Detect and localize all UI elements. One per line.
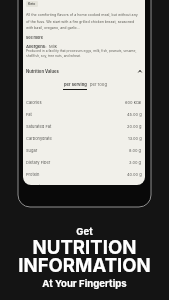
- staticText: 8.00 g: [129, 148, 142, 153]
- staticText: At Your Fingertips: [0, 278, 169, 290]
- staticText: Sugar: [26, 148, 38, 153]
- button[interactable]: Sugar: [26, 144, 142, 156]
- staticText: INFORMATION: [0, 254, 169, 277]
- staticText: 45.00 g: [127, 112, 142, 117]
- staticText: Dietary Fiber: [26, 160, 51, 165]
- button[interactable]: Saturated Fat: [26, 120, 142, 132]
- staticText: 20.00 g: [127, 124, 142, 129]
- staticText: Get: [0, 226, 169, 237]
- button[interactable]: Cholesterol: [26, 180, 142, 185]
- button[interactable]: Protein: [26, 168, 142, 180]
- staticText: Cholesterol: [26, 184, 48, 185]
- staticText: Milk: [49, 44, 57, 49]
- staticText: Allergens:: [26, 44, 47, 49]
- staticText: 3.00 g: [129, 160, 142, 165]
- staticText: Nutrition Values: [26, 69, 59, 74]
- staticText: 225.00 mg: [121, 184, 142, 185]
- staticText: NUTRITION: [0, 236, 169, 259]
- staticText: Produced in a facility that processes eg…: [26, 49, 142, 58]
- staticText: 40.00 g: [127, 172, 142, 177]
- staticText: Fat: [26, 112, 32, 117]
- staticText: Carbohydrate: [26, 136, 52, 141]
- other: Collapse nutrition values: [138, 69, 142, 74]
- button[interactable]: see more: [26, 35, 44, 40]
- staticText: Protein: [26, 172, 40, 177]
- staticText: Calories: [26, 100, 42, 105]
- button[interactable]: Nutrition Values: [26, 69, 142, 74]
- button[interactable]: Dietary Fiber: [26, 156, 142, 168]
- staticText: Keto: [28, 2, 36, 6]
- staticText: Saturated Fat: [26, 124, 52, 129]
- staticText: per serving: [64, 82, 87, 87]
- staticText: 600 kcal: [125, 100, 142, 105]
- button[interactable]: per 100g: [90, 82, 107, 87]
- staticText: All the comforting flavors of a home coo…: [26, 13, 142, 30]
- staticText: 13.00 g: [128, 136, 142, 141]
- button[interactable]: Keto: [26, 1, 38, 7]
- button[interactable]: Carbohydrate: [26, 132, 142, 144]
- button[interactable]: per serving: [63, 82, 87, 90]
- button[interactable]: Calories: [26, 96, 142, 108]
- button[interactable]: Fat: [26, 108, 142, 120]
